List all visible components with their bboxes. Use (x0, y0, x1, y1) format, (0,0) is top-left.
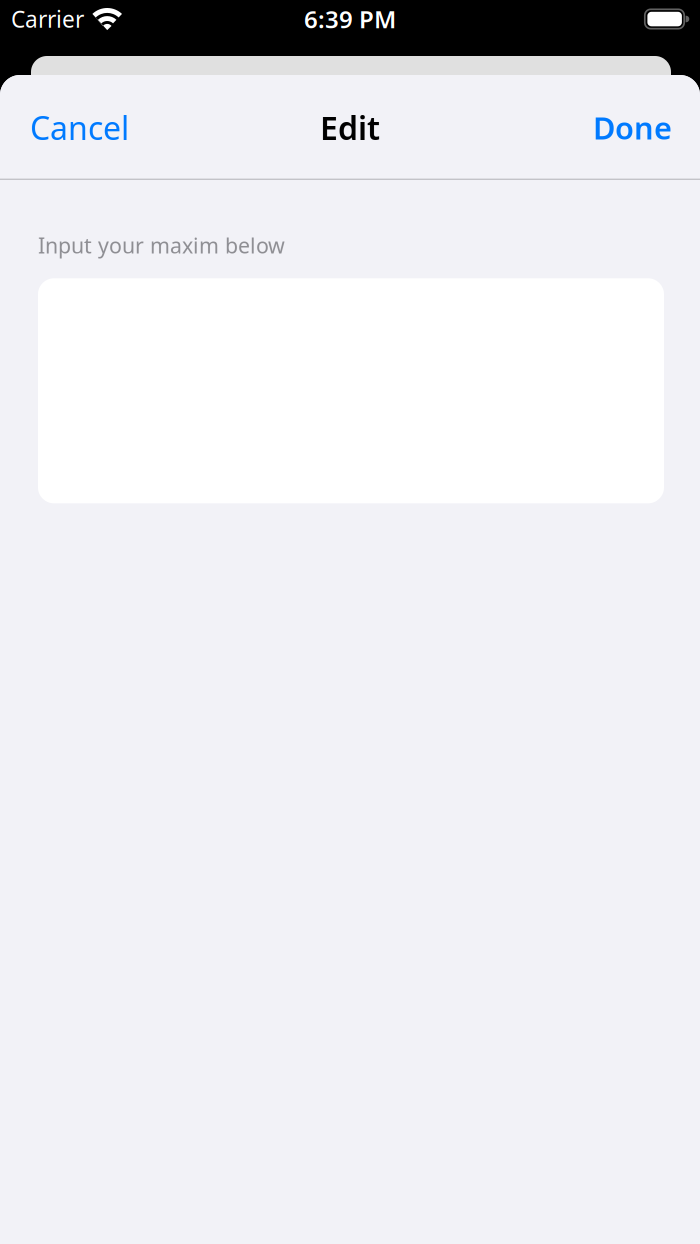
staticText: Edit (320, 106, 380, 149)
staticText: Input your maxim below (38, 231, 285, 259)
staticText: Cancel (30, 106, 129, 149)
button[interactable]: Cancel (22, 90, 137, 165)
button[interactable]: Done (585, 91, 680, 164)
staticText: 6:39 PM (304, 3, 396, 35)
staticText: Done (593, 107, 672, 148)
staticText: Carrier (11, 4, 84, 34)
